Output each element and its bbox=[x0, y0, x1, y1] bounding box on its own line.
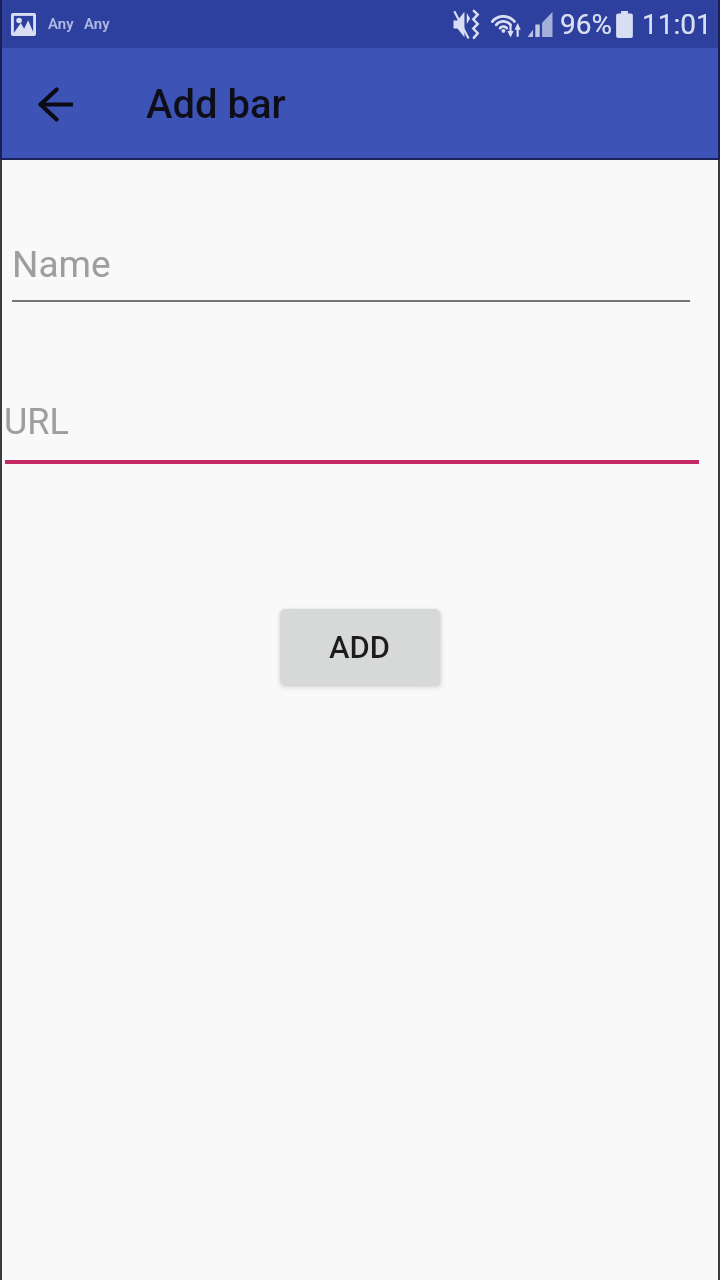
button[interactable]: URL bbox=[0, 380, 720, 464]
staticText: Any bbox=[48, 15, 74, 33]
staticText: Name bbox=[12, 243, 111, 286]
staticText: Any bbox=[84, 15, 110, 33]
staticText: ADD bbox=[329, 629, 391, 665]
staticText: 96% bbox=[560, 8, 612, 41]
button[interactable]: Name bbox=[0, 220, 720, 302]
staticText: Add bar bbox=[146, 81, 286, 128]
button[interactable]: Navigate up bbox=[14, 62, 98, 146]
staticText: 11:01 bbox=[642, 8, 712, 41]
staticText: URL bbox=[4, 401, 69, 443]
button[interactable]: ADD bbox=[280, 609, 440, 685]
